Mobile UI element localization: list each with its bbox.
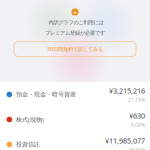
staticText: 30日間無料で試してみる bbox=[47, 45, 103, 53]
staticText: ¥3,215,216 bbox=[109, 86, 145, 96]
button[interactable]: 30日間無料で試してみる bbox=[14, 41, 136, 56]
staticText: 預金・現金・暗号資産 bbox=[16, 91, 76, 98]
staticText: ¥630 bbox=[129, 111, 145, 121]
button[interactable]: 投資信託 bbox=[0, 132, 150, 150]
staticText: 21.15% bbox=[128, 97, 145, 103]
staticText: 内訳グラフのご利用には bbox=[48, 19, 103, 26]
staticText: 78.84% bbox=[128, 147, 145, 150]
staticText: 株式(現物) bbox=[16, 115, 44, 124]
staticText: 投資信託 bbox=[16, 141, 40, 148]
staticText: プレミアム登録が必要です bbox=[45, 30, 105, 36]
button[interactable]: 預金・現金・暗号資産 bbox=[0, 82, 150, 107]
button[interactable]: 株式(現物) bbox=[0, 107, 150, 132]
staticText: 0.00% bbox=[131, 122, 145, 128]
staticText: ¥11,985,077 bbox=[105, 136, 145, 146]
